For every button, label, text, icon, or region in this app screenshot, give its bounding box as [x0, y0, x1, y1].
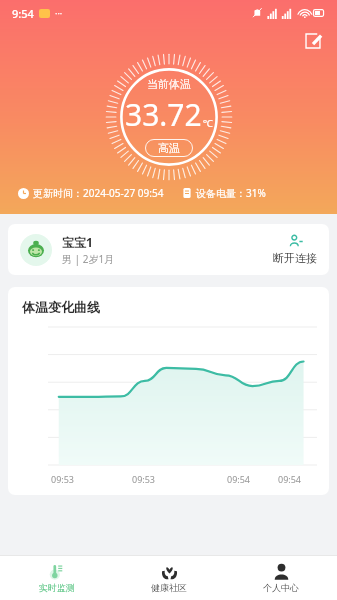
- staticText: 高温: [158, 141, 180, 155]
- staticText: ···: [55, 7, 63, 19]
- staticText: 体温变化曲线: [22, 299, 100, 315]
- staticText: 宝宝1: [62, 234, 93, 250]
- staticText: 男 | 2岁1月: [62, 252, 115, 266]
- staticText: 更新时间：2024-05-27 09:54: [33, 186, 164, 200]
- button[interactable]: 实时监测: [0, 556, 113, 600]
- staticText: 09:53: [132, 473, 156, 485]
- button[interactable]: 高温: [158, 141, 180, 155]
- button[interactable]: 个人中心: [225, 556, 337, 600]
- staticText: 09:54: [227, 473, 251, 485]
- staticText: 实时监测: [39, 582, 75, 593]
- staticText: 9:54: [12, 6, 34, 21]
- button[interactable]: Edit: [299, 26, 327, 54]
- staticText: 33.72: [125, 94, 202, 135]
- staticText: 个人中心: [263, 582, 299, 593]
- staticText: 断开连接: [273, 251, 317, 265]
- staticText: ℃: [203, 116, 213, 130]
- button[interactable]: 宝宝1: [8, 224, 329, 275]
- staticText: 当前体温: [147, 77, 191, 91]
- staticText: 设备电量：31%: [196, 186, 266, 200]
- staticText: 健康社区: [151, 582, 187, 593]
- staticText: 09:54: [278, 473, 302, 485]
- staticText: 09:53: [51, 473, 75, 485]
- button[interactable]: 断开连接: [273, 234, 317, 265]
- button[interactable]: 健康社区: [113, 556, 225, 600]
